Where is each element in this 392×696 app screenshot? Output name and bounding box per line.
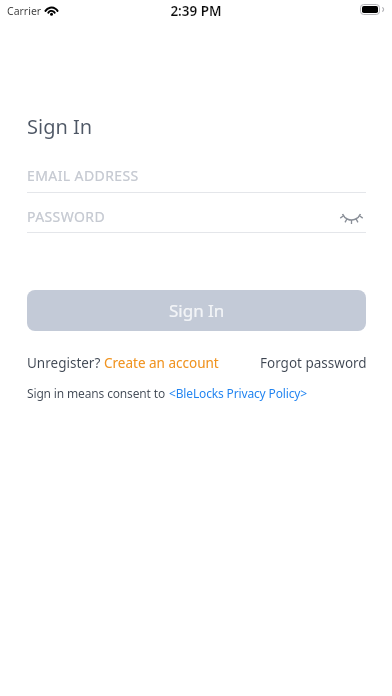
button[interactable]: Sign In	[27, 290, 366, 331]
staticText: EMAIL ADDRESS	[27, 166, 139, 185]
staticText: Sign In	[27, 113, 93, 140]
staticText: Sign In	[169, 299, 225, 322]
button[interactable]: PASSWORD	[27, 207, 366, 233]
button[interactable]: Create an account	[104, 354, 219, 372]
staticText: Unregister?	[27, 354, 104, 372]
staticText: Sign in means consent to	[27, 385, 169, 401]
button[interactable]: Forgot password	[260, 354, 367, 372]
button[interactable]	[342, 211, 362, 227]
staticText: PASSWORD	[27, 207, 106, 226]
staticText: Carrier	[7, 4, 42, 18]
button[interactable]: <BleLocks Privacy Policy>	[169, 385, 307, 401]
button[interactable]: EMAIL ADDRESS	[27, 166, 366, 193]
staticText: 2:39 PM	[0, 2, 392, 20]
